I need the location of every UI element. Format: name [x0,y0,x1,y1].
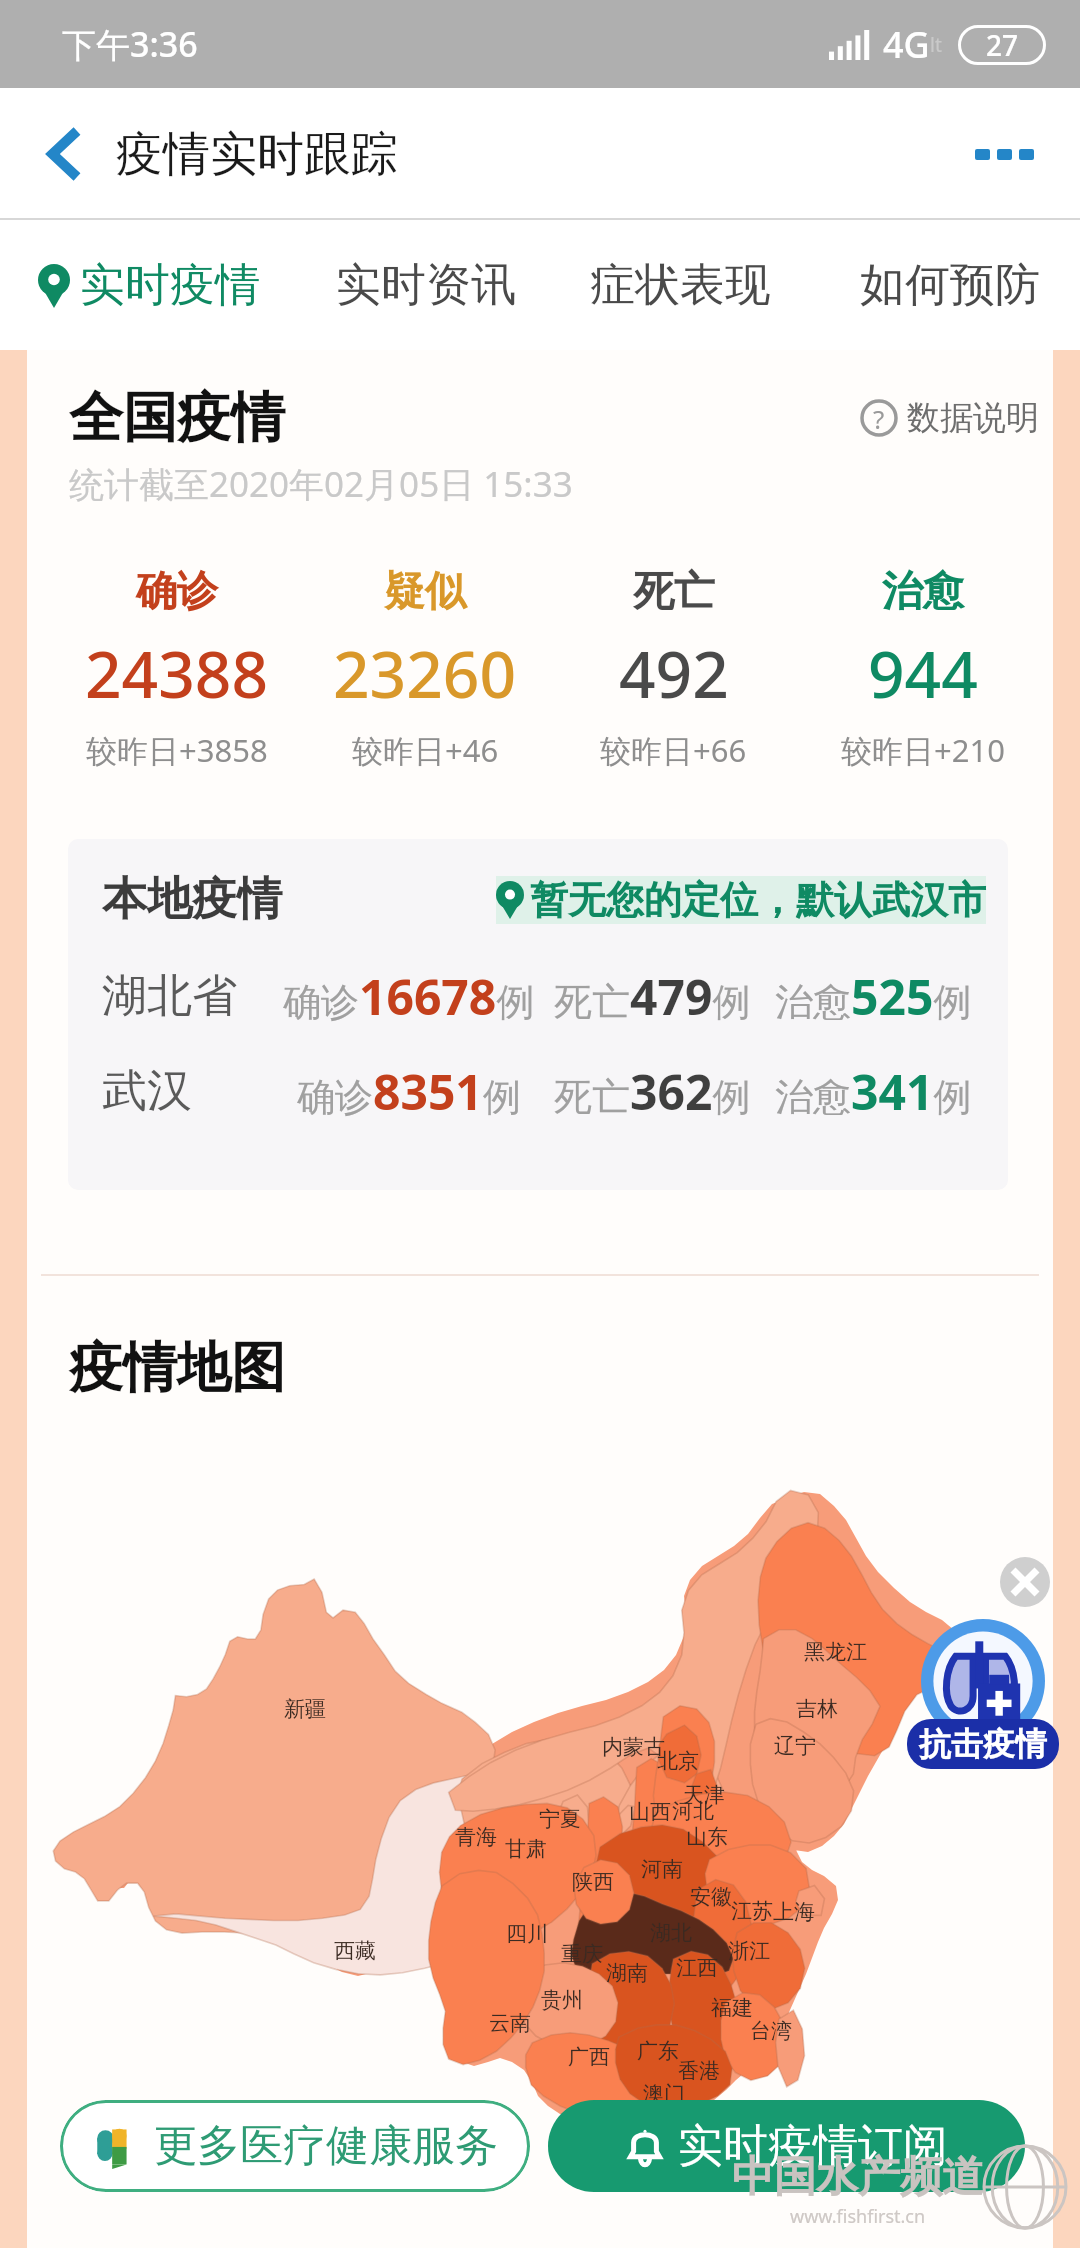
staticText: 贵州 [541,1987,583,2013]
staticText: 中国水产频道 [732,2151,984,2204]
staticText: 台湾 [750,2018,792,2044]
staticText: 下午3:36 [62,21,198,67]
staticText: 甘肃 [505,1836,547,1862]
button[interactable]: More options [964,114,1044,194]
staticText: 死亡479例 [554,964,751,1029]
staticText: 治愈341例 [775,1059,972,1124]
staticText: 广西 [568,2044,610,2070]
staticText: ? [873,401,885,436]
staticText: 死亡 [633,566,715,618]
button[interactable]: Close [1000,1557,1050,1607]
staticText: 上海 [773,1899,815,1925]
staticText: 疫情地图 [69,1334,285,1402]
staticText: 天津 [683,1782,725,1808]
staticText: 23260 [333,630,517,717]
staticText: 治愈 [882,566,964,618]
staticText: 吉林 [796,1696,838,1722]
staticText: 黑龙江 [804,1639,867,1665]
staticText: 死亡362例 [554,1059,751,1124]
button[interactable]: 实时资讯 [282,257,534,314]
staticText: 更多医疗健康服务 [154,2119,498,2173]
staticText: 治愈525例 [775,964,972,1029]
staticText: 宁夏 [539,1806,581,1832]
staticText: 全国疫情 [69,384,285,452]
staticText: 湖南 [606,1960,648,1986]
staticText: 新疆 [284,1696,326,1722]
staticText: 确诊16678例 [283,964,535,1029]
staticText: 湖北省 [102,968,274,1025]
button[interactable]: 抗击疫情 [921,1619,1045,1743]
staticText: 江西 [676,1955,718,1981]
staticText: 内蒙古 [602,1734,665,1760]
staticText: lt [930,32,942,58]
staticText: 西藏 [334,1938,376,1964]
staticText: 确诊8351例 [297,1059,521,1124]
staticText: 辽宁 [774,1733,816,1759]
staticText: 安徽 [690,1884,732,1910]
staticText: 492 [619,630,729,717]
button[interactable]: ? [860,397,1039,439]
staticText: 重庆 [561,1941,603,1967]
staticText: 实时资讯 [336,257,516,314]
button[interactable]: 症状表现 [534,257,787,314]
staticText: 确诊 [136,566,218,618]
staticText: 较昨日+66 [600,729,747,771]
staticText: 较昨日+3858 [86,729,268,771]
staticText: 实时疫情订阅 [678,2118,948,2175]
button[interactable]: 实时疫情 [30,257,282,314]
staticText: 澳门 [643,2081,685,2107]
button[interactable]: 更多医疗健康服务 [60,2100,530,2192]
staticText: 河北 [672,1798,714,1824]
staticText: 暂无您的定位，默认武汉市 [530,876,986,924]
staticText: 广东 [637,2038,679,2064]
staticText: 数据说明 [907,397,1039,439]
staticText: 抗击疫情 [919,1724,1047,1764]
button[interactable]: 实时疫情订阅 [548,2100,1025,2192]
staticText: 河南 [641,1856,683,1882]
staticText: 症状表现 [590,257,770,314]
staticText: 山东 [686,1824,728,1850]
button[interactable]: Back [30,119,100,189]
staticText: 北京 [657,1748,699,1774]
staticText: 云南 [489,2010,531,2036]
staticText: 湖北 [650,1920,692,1946]
button[interactable]: 暂无您的定位，默认武汉市 [496,876,986,924]
staticText: 实时疫情 [80,257,260,314]
staticText: 较昨日+210 [841,729,1005,771]
staticText: 福建 [711,1995,753,2021]
staticText: 疫情实时跟踪 [116,125,398,184]
staticText: 浙江 [728,1938,770,1964]
staticText: 统计截至2020年02月05日 15:33 [69,460,573,508]
button[interactable]: 如何预防 [787,257,1040,314]
staticText: 山西 [629,1799,671,1825]
staticText: 4G [883,20,930,69]
staticText: 疑似 [384,566,466,618]
staticText: 武汉 [102,1063,274,1120]
staticText: 江苏 [731,1898,773,1924]
staticText: 944 [868,630,978,717]
staticText: 如何预防 [860,257,1040,314]
staticText: 27 [986,26,1019,64]
staticText: 本地疫情 [102,871,282,928]
staticText: 香港 [678,2058,720,2084]
staticText: 陕西 [572,1869,614,1895]
staticText: 较昨日+46 [352,729,499,771]
staticText: 24388 [85,630,269,717]
staticText: 青海 [455,1824,497,1850]
staticText: www.fishfirst.cn [790,2204,926,2229]
staticText: 四川 [506,1921,548,1947]
